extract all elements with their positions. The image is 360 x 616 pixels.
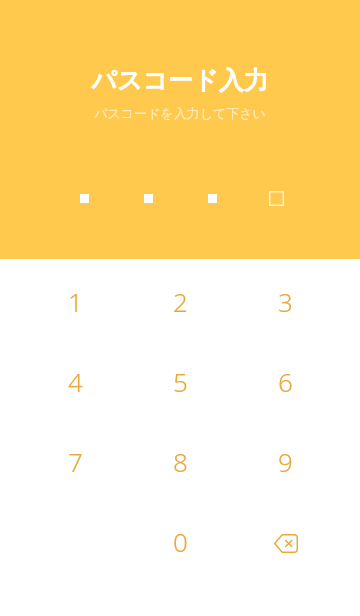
staticText: 7 xyxy=(68,444,83,479)
button[interactable]: 8 xyxy=(128,421,233,501)
button[interactable]: 0 xyxy=(128,501,233,581)
button[interactable]: 7 xyxy=(23,421,128,501)
button[interactable]: 4 xyxy=(23,341,128,421)
staticText: 9 xyxy=(278,444,293,479)
button[interactable]: Backspace xyxy=(233,501,338,581)
button[interactable]: 3 xyxy=(233,261,338,341)
button[interactable]: 9 xyxy=(233,421,338,501)
staticText: 2 xyxy=(173,284,188,319)
button[interactable]: 6 xyxy=(233,341,338,421)
button[interactable]: 1 xyxy=(23,261,128,341)
staticText: 4 xyxy=(68,364,83,399)
button[interactable]: 5 xyxy=(128,341,233,421)
staticText: 3 xyxy=(278,284,293,319)
button[interactable]: 2 xyxy=(128,261,233,341)
staticText: パスコード入力 xyxy=(91,65,269,96)
staticText: パスコードを入力して下さい xyxy=(94,105,266,121)
staticText: 8 xyxy=(173,444,188,479)
staticText: 5 xyxy=(173,364,188,399)
staticText: 0 xyxy=(173,524,188,559)
staticText: 6 xyxy=(278,364,293,399)
staticText: 1 xyxy=(68,284,83,319)
